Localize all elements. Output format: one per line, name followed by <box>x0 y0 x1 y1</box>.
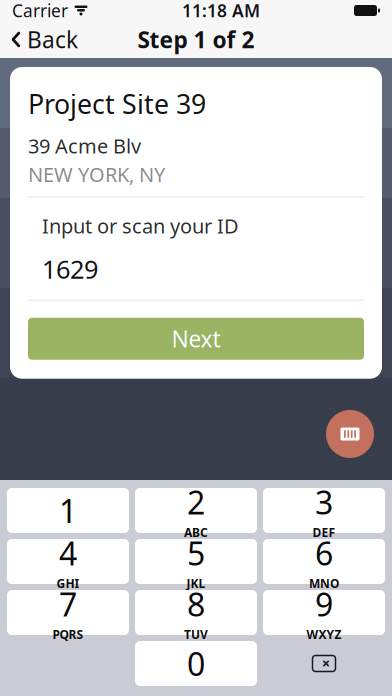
staticText: Step 1 of 2 <box>137 24 254 54</box>
staticText: 7 <box>59 583 77 625</box>
staticText: TUV <box>184 626 208 642</box>
button[interactable]: Scan barcode <box>326 410 374 458</box>
button[interactable]: Back <box>0 21 88 58</box>
button[interactable]: 4 <box>7 539 129 584</box>
staticText: 0 <box>187 642 205 685</box>
staticText: PQRS <box>52 626 83 642</box>
staticText: Project Site 39 <box>28 86 206 121</box>
staticText: WXYZ <box>306 626 341 642</box>
button[interactable]: Delete <box>263 641 385 686</box>
button[interactable]: Next <box>28 318 364 360</box>
button[interactable]: 7 <box>7 590 129 635</box>
button[interactable]: 0 <box>135 641 257 686</box>
staticText: NEW YORK, NY <box>28 161 165 188</box>
staticText: JKL <box>186 575 205 591</box>
button[interactable]: 6 <box>263 539 385 584</box>
button[interactable]: 8 <box>135 590 257 635</box>
staticText: ABC <box>184 524 208 540</box>
staticText: 6 <box>315 532 333 574</box>
button[interactable]: 5 <box>135 539 257 584</box>
staticText: 2 <box>187 481 205 523</box>
staticText: 9 <box>315 583 333 625</box>
staticText: 8 <box>187 583 205 625</box>
staticText: 4 <box>59 532 77 574</box>
button[interactable]: 1 <box>7 488 129 533</box>
staticText: 3 <box>315 481 333 523</box>
staticText: Next <box>171 324 220 354</box>
staticText: 1 <box>59 489 77 532</box>
staticText: Input or scan your ID <box>42 212 239 239</box>
staticText: Carrier <box>12 0 68 22</box>
staticText: 1629 <box>42 252 98 286</box>
staticText: Back <box>27 24 78 54</box>
staticText: GHI <box>56 575 79 591</box>
button[interactable]: 3 <box>263 488 385 533</box>
staticText: DEF <box>312 524 335 540</box>
staticText: 11:18 AM <box>182 0 260 22</box>
staticText: MNO <box>309 575 339 591</box>
button[interactable]: 9 <box>263 590 385 635</box>
staticText: 39 Acme Blv <box>28 132 141 159</box>
button[interactable]: 2 <box>135 488 257 533</box>
staticText: 5 <box>187 532 205 574</box>
